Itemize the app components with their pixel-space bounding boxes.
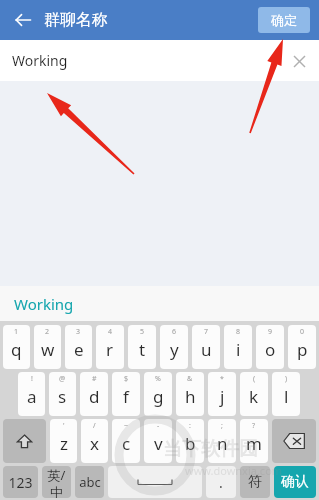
button[interactable]: ; [208, 419, 236, 463]
button[interactable]: Back [8, 5, 38, 35]
staticText: h [185, 385, 196, 408]
staticText: ) [285, 374, 288, 384]
staticText: & [187, 374, 193, 384]
staticText: 当下软件园 [163, 437, 258, 461]
button[interactable]: $ [112, 372, 140, 416]
staticText: r [106, 338, 114, 361]
button[interactable]: Space [108, 466, 202, 498]
staticText: / [93, 421, 96, 431]
staticText: 英/中 [42, 466, 71, 498]
button[interactable]: @ [49, 372, 76, 416]
staticText: t [139, 338, 146, 361]
staticText: : [189, 421, 191, 431]
staticText: ! [31, 374, 33, 384]
staticText: x [90, 432, 99, 455]
staticText: 9 [268, 327, 273, 337]
staticText: l [284, 385, 289, 408]
button[interactable]: 0 [288, 325, 316, 369]
button[interactable]: 确定 [258, 7, 310, 33]
button[interactable]: : [176, 419, 204, 463]
staticText: c [122, 432, 131, 455]
button[interactable]: # [80, 372, 108, 416]
staticText: - [157, 421, 160, 431]
staticText: ~ [124, 421, 129, 431]
staticText: s [58, 385, 67, 408]
staticText: z [60, 432, 68, 455]
button[interactable]: abc [75, 466, 104, 498]
staticText: 4 [108, 327, 113, 337]
staticText: p [297, 338, 308, 361]
button[interactable]: 6 [160, 325, 188, 369]
staticText: 7 [204, 327, 209, 337]
button[interactable]: ! [18, 372, 45, 416]
staticText: abc [79, 473, 101, 491]
staticText: b [185, 432, 196, 455]
button[interactable]: 2 [34, 325, 61, 369]
staticText: % [155, 374, 161, 384]
button[interactable]: ? [240, 419, 268, 463]
staticText: Working [12, 51, 68, 70]
button[interactable]: ) [272, 372, 300, 416]
button[interactable]: - [144, 419, 172, 463]
staticText: q [11, 338, 22, 361]
button[interactable]: 确认 [274, 466, 316, 498]
staticText: w [41, 338, 55, 361]
button[interactable]: 8 [224, 325, 252, 369]
button[interactable]: Clear [287, 49, 311, 73]
button[interactable]: Working [0, 286, 319, 321]
staticText: . [219, 473, 223, 492]
staticText: 123 [8, 473, 33, 492]
button[interactable]: Shift [3, 419, 46, 463]
staticText: j [220, 385, 225, 408]
button[interactable]: 符 [240, 466, 270, 498]
staticText: 3 [76, 327, 81, 337]
staticText: o [265, 338, 276, 361]
staticText: 群聊名称 [44, 10, 108, 30]
button[interactable]: 123 [3, 466, 38, 498]
staticText: ( [253, 374, 256, 384]
staticText: y [170, 338, 179, 361]
staticText: Working [14, 294, 74, 314]
staticText: 6 [172, 327, 177, 337]
staticText: 确定 [271, 12, 297, 28]
staticText: # [92, 374, 97, 384]
staticText: v [154, 432, 163, 455]
button[interactable]: 3 [65, 325, 92, 369]
staticText: 2 [45, 327, 50, 337]
staticText: i [236, 338, 241, 361]
button[interactable]: % [144, 372, 172, 416]
staticText: ' [63, 421, 65, 431]
button[interactable]: . [206, 466, 236, 498]
staticText: @ [59, 374, 66, 384]
staticText: u [201, 338, 212, 361]
staticText: g [153, 385, 164, 408]
button[interactable]: 5 [128, 325, 156, 369]
staticText: f [123, 385, 129, 408]
staticText: n [217, 432, 228, 455]
staticText: a [27, 385, 37, 408]
button[interactable]: / [81, 419, 108, 463]
staticText: 5 [140, 327, 145, 337]
staticText: 8 [236, 327, 241, 337]
button[interactable]: 1 [3, 325, 30, 369]
staticText: 1 [14, 327, 19, 337]
button[interactable]: ( [240, 372, 268, 416]
button[interactable]: Working [0, 40, 319, 81]
staticText: * [220, 374, 224, 384]
button[interactable]: & [176, 372, 204, 416]
button[interactable]: Backspace [272, 419, 316, 463]
button[interactable]: 7 [192, 325, 220, 369]
staticText: e [74, 338, 84, 361]
button[interactable]: ' [50, 419, 77, 463]
staticText: 确认 [281, 473, 309, 491]
button[interactable]: 英/中 [42, 466, 71, 498]
button[interactable]: * [208, 372, 236, 416]
staticText: www.downxia.com [185, 463, 283, 478]
button[interactable]: 4 [96, 325, 124, 369]
button[interactable]: ~ [112, 419, 140, 463]
staticText: m [246, 432, 262, 455]
button[interactable]: 9 [256, 325, 284, 369]
staticText: ? [252, 421, 256, 431]
staticText: k [249, 385, 259, 408]
staticText: 0 [300, 327, 305, 337]
